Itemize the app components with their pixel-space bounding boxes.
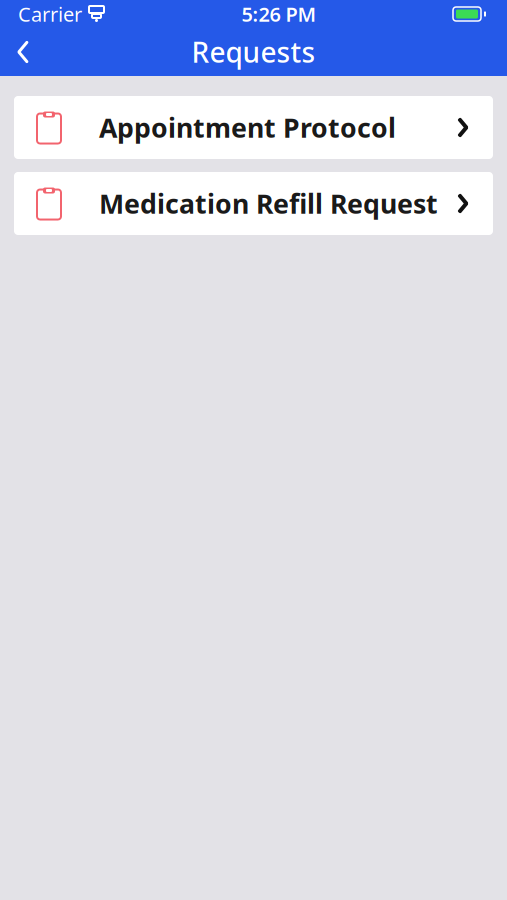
staticText: 5:26 PM: [241, 1, 316, 27]
button[interactable]: Medication Refill Request: [14, 172, 493, 235]
button[interactable]: Back: [0, 28, 46, 76]
button[interactable]: Appointment Protocol: [14, 96, 493, 159]
staticText: Appointment Protocol: [99, 110, 396, 145]
staticText: Medication Refill Request: [99, 186, 438, 221]
staticText: Requests: [191, 33, 315, 71]
staticText: Carrier: [18, 1, 82, 27]
